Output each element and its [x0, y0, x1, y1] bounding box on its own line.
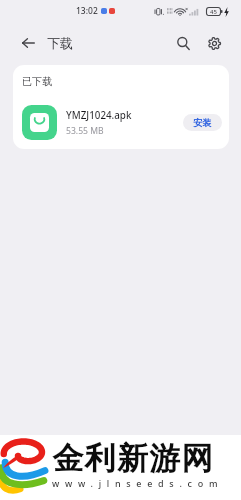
- button[interactable]: Back: [15, 30, 41, 56]
- staticText: 已下载: [22, 75, 52, 88]
- staticText: 安装: [193, 117, 212, 129]
- staticText: 下载: [47, 35, 73, 51]
- button[interactable]: Settings: [201, 30, 227, 56]
- staticText: 金利新游网: [52, 439, 213, 478]
- staticText: 13:02: [76, 5, 98, 17]
- staticText: YMZJ1024.apk: [66, 109, 132, 122]
- staticText: www.jlnseeds.com: [52, 477, 224, 489]
- button[interactable]: Search: [170, 30, 196, 56]
- staticText: 53.55 MB: [66, 125, 104, 137]
- staticText: 45: [210, 8, 217, 16]
- button[interactable]: 安装: [183, 114, 222, 131]
